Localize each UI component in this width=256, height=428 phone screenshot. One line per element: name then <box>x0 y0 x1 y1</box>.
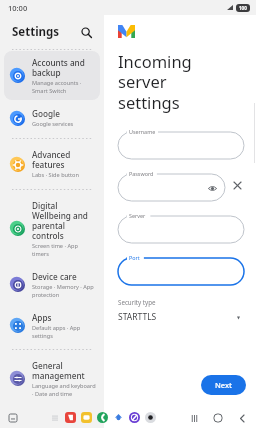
staticText: Incoming server settings <box>118 50 244 114</box>
button[interactable]: Show password <box>208 184 217 193</box>
staticText: Screen time · App timers <box>32 242 96 257</box>
staticText: Username <box>129 128 156 135</box>
staticText: 10:00 <box>8 3 28 13</box>
button[interactable]: All apps <box>49 412 61 424</box>
button[interactable]: Advanced features <box>4 143 100 185</box>
staticText: Manage accounts · Smart Switch <box>32 79 96 94</box>
button[interactable]: Clear password <box>231 179 244 192</box>
button[interactable]: Google <box>4 102 100 134</box>
staticText: Accounts and backup <box>32 57 96 78</box>
button[interactable]: Search settings <box>77 23 95 41</box>
staticText: Security type <box>118 298 156 306</box>
staticText: Digital Wellbeing and parental controls <box>32 200 96 241</box>
button[interactable]: Recents <box>186 410 202 426</box>
button[interactable]: App 1 <box>80 411 93 424</box>
staticText: Google services <box>32 120 74 128</box>
button[interactable]: Digital Wellbeing and parental controls <box>4 194 100 263</box>
staticText: Settings <box>12 24 60 40</box>
staticText: Labs · Side button <box>32 171 79 179</box>
staticText: Storage · Memory · App protection <box>32 283 96 298</box>
button[interactable]: Back <box>234 410 250 426</box>
button[interactable]: Recent apps tray <box>6 411 20 425</box>
staticText: Advanced features <box>32 149 96 170</box>
button[interactable]: Device care <box>4 265 100 304</box>
button[interactable]: Accounts and backup <box>4 51 100 100</box>
button[interactable]: App 5 <box>144 411 157 424</box>
button[interactable]: General management <box>4 354 100 403</box>
staticText: Language and keyboard · Date and time <box>32 382 96 397</box>
button[interactable]: App 3 <box>112 411 125 424</box>
staticText: Next <box>215 380 232 390</box>
staticText: Device care <box>32 271 77 282</box>
staticText: Apps <box>32 312 52 323</box>
button[interactable]: App 2 <box>96 411 109 424</box>
staticText: Port <box>129 254 140 261</box>
button[interactable]: App 4 <box>128 411 141 424</box>
staticText: Default apps · App settings <box>32 324 96 339</box>
staticText: Server <box>129 212 146 219</box>
button[interactable]: STARTTLS <box>118 311 244 323</box>
button[interactable]: Apps <box>4 306 100 345</box>
staticText: Google <box>32 108 60 119</box>
staticText: 100 <box>239 5 247 11</box>
staticText: General management <box>32 360 96 381</box>
button[interactable]: Home <box>210 410 226 426</box>
staticText: Password <box>129 170 154 177</box>
button[interactable]: Next <box>201 375 246 395</box>
button[interactable]: App 0 <box>64 411 77 424</box>
staticText: STARTTLS <box>118 311 157 323</box>
